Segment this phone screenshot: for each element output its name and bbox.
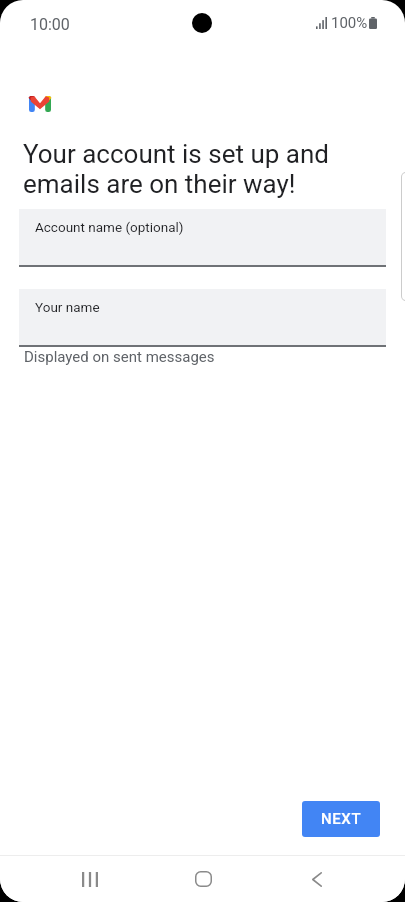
staticText: 10:00 — [30, 15, 70, 34]
button[interactable]: Your name — [19, 289, 386, 345]
staticText: Account name (optional) — [35, 219, 184, 235]
staticText: 100% — [331, 14, 368, 32]
button[interactable]: Recent apps — [66, 856, 114, 902]
staticText: Your name — [35, 299, 100, 315]
staticText: Your account is set up and emails are on… — [23, 139, 329, 199]
button[interactable]: Home — [179, 856, 227, 902]
staticText: NEXT — [321, 810, 362, 828]
button[interactable]: NEXT — [302, 801, 380, 837]
staticText: Displayed on sent messages — [24, 348, 215, 366]
button[interactable]: Back — [293, 856, 341, 902]
button[interactable]: Account name (optional) — [19, 209, 386, 265]
